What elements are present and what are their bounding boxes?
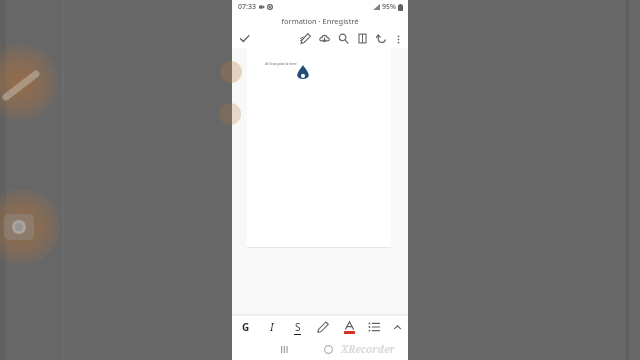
staticText: G <box>242 320 250 334</box>
staticText: S <box>295 320 301 334</box>
button[interactable]: Italique <box>263 318 281 336</box>
staticText: de l'eau pour la terre <box>265 62 297 66</box>
button[interactable]: Applications récentes <box>275 340 293 358</box>
button[interactable]: Mode suggestion <box>298 31 313 46</box>
button[interactable]: Couleur du texte <box>340 318 358 336</box>
staticText: I <box>270 320 274 334</box>
button[interactable]: Surligner <box>314 318 332 336</box>
staticText: formation · Enregistré <box>281 16 359 26</box>
button[interactable]: Liste à puces <box>365 318 383 336</box>
button[interactable]: Terminé <box>236 30 252 46</box>
button[interactable]: Développer <box>391 321 403 333</box>
button[interactable]: Accueil <box>319 340 337 358</box>
staticText: 95% <box>382 2 396 12</box>
button[interactable]: Rechercher <box>336 31 351 46</box>
button[interactable]: Plus d'options <box>391 32 405 46</box>
button[interactable]: Mise en page <box>355 31 370 46</box>
button[interactable]: Disponible hors connexion <box>317 31 332 46</box>
button[interactable]: Annuler <box>374 31 389 46</box>
staticText: 07:33 <box>238 2 256 12</box>
button[interactable]: Gras <box>237 318 255 336</box>
button[interactable]: Souligné <box>288 318 306 336</box>
staticText: XRecorder <box>341 342 396 356</box>
button[interactable]: de l'eau pour la terre <box>247 48 391 247</box>
